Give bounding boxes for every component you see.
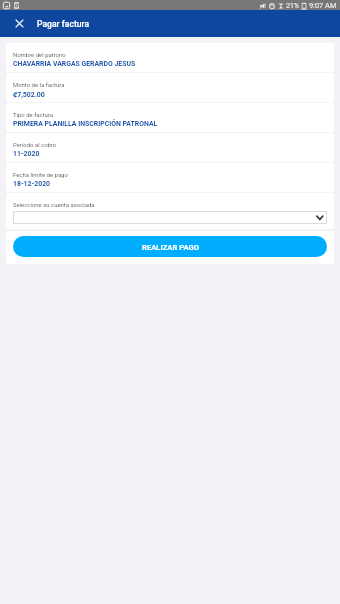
staticText: 18-12-2020: [13, 180, 51, 188]
staticText: REALIZAR PAGO: [142, 243, 199, 252]
staticText: Fecha límite de pago: [13, 171, 68, 178]
staticText: 11-2020: [13, 150, 40, 158]
staticText: ₡7,502.00: [13, 90, 45, 99]
staticText: Pagar factura: [37, 19, 90, 29]
staticText: 9:07 AM: [309, 1, 337, 10]
staticText: PRIMERA PLANILLA INSCRIPCIÓN PATRONAL: [13, 120, 158, 128]
staticText: 21%: [286, 2, 299, 10]
staticText: CHAVARRIA VARGAS GERARDO JESUS: [13, 60, 136, 68]
button[interactable]: Nombre del patrono: [6, 43, 334, 72]
button[interactable]: Periodo al cobro: [6, 133, 334, 162]
staticText: Tipo de factura: [13, 111, 53, 118]
staticText: Seleccione su cuenta asociada: [13, 201, 95, 208]
staticText: Nombre del patrono: [13, 51, 66, 58]
button[interactable]: Close: [6, 10, 33, 37]
staticText: Monto de la factura: [13, 81, 65, 88]
button[interactable]: REALIZAR PAGO: [13, 236, 327, 257]
button[interactable]: Seleccione su cuenta asociada: [13, 211, 327, 224]
button[interactable]: Monto de la factura: [6, 73, 334, 102]
staticText: Periodo al cobro: [13, 141, 57, 148]
button[interactable]: Fecha límite de pago: [6, 163, 334, 192]
button[interactable]: Tipo de factura: [6, 103, 334, 132]
